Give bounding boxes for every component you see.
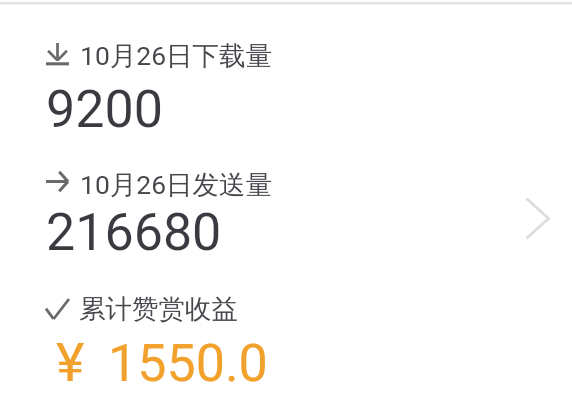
staticText: 9200 <box>46 79 163 140</box>
staticText: 10月26日发送量 <box>80 168 273 201</box>
button[interactable]: Open details <box>516 188 560 248</box>
staticText: 累计赞赏收益 <box>79 292 238 325</box>
staticText: 216680 <box>46 202 222 263</box>
staticText: 1550.0 <box>108 333 268 394</box>
staticText: 10月26日下载量 <box>80 39 273 72</box>
staticText: ¥ <box>56 331 85 394</box>
button[interactable]: 10月26日下载量 <box>0 0 572 414</box>
